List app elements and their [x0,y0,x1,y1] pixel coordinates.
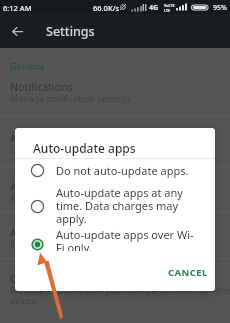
staticText: CANCEL [168,266,208,279]
staticText: Manage notification settings [10,92,131,104]
staticText: General [10,60,44,72]
button[interactable]: Auto-update apps [0,131,230,165]
staticText: Auto-update apps over Wi-Fi only. [56,227,199,251]
staticText: 66.0K/s [93,3,120,13]
staticText: Do not auto-update apps. [56,163,189,178]
staticText: For new apps [10,238,67,250]
staticText: LTE [164,8,171,13]
staticText: Clear local search history [10,272,133,286]
staticText: Auto-update apps at any time. Data charg… [56,185,199,227]
staticText: 95% [213,3,227,13]
button[interactable]: Add icon to Home screen [0,226,230,260]
button[interactable]: Auto-play videos [0,180,230,214]
button[interactable]: Back [7,21,28,42]
button[interactable]: CANCEL [160,260,215,284]
staticText: Auto-play videos [10,180,92,194]
staticText: Auto-update apps [33,140,136,156]
button[interactable]: Notifications [0,80,230,114]
staticText: Settings [46,23,95,40]
staticText: Always [10,192,40,204]
staticText: 4G [149,3,159,13]
staticText: Add icon to Home screen [10,226,134,240]
staticText: Over Wi-Fi only [10,143,74,155]
button[interactable]: Clear local search history [0,272,230,306]
staticText: VoLTE [164,3,175,8]
staticText: Auto-update apps [10,131,99,145]
button[interactable]: Auto-update apps over Wi-Fi only. [15,227,215,251]
staticText: 6:12 AM [3,3,32,13]
staticText: Remove searches that you have performed … [10,284,230,306]
button[interactable]: Auto-update apps at any time. Data charg… [15,182,215,230]
button[interactable]: Do not auto-update apps. [15,158,215,182]
staticText: Notifications [10,80,73,94]
